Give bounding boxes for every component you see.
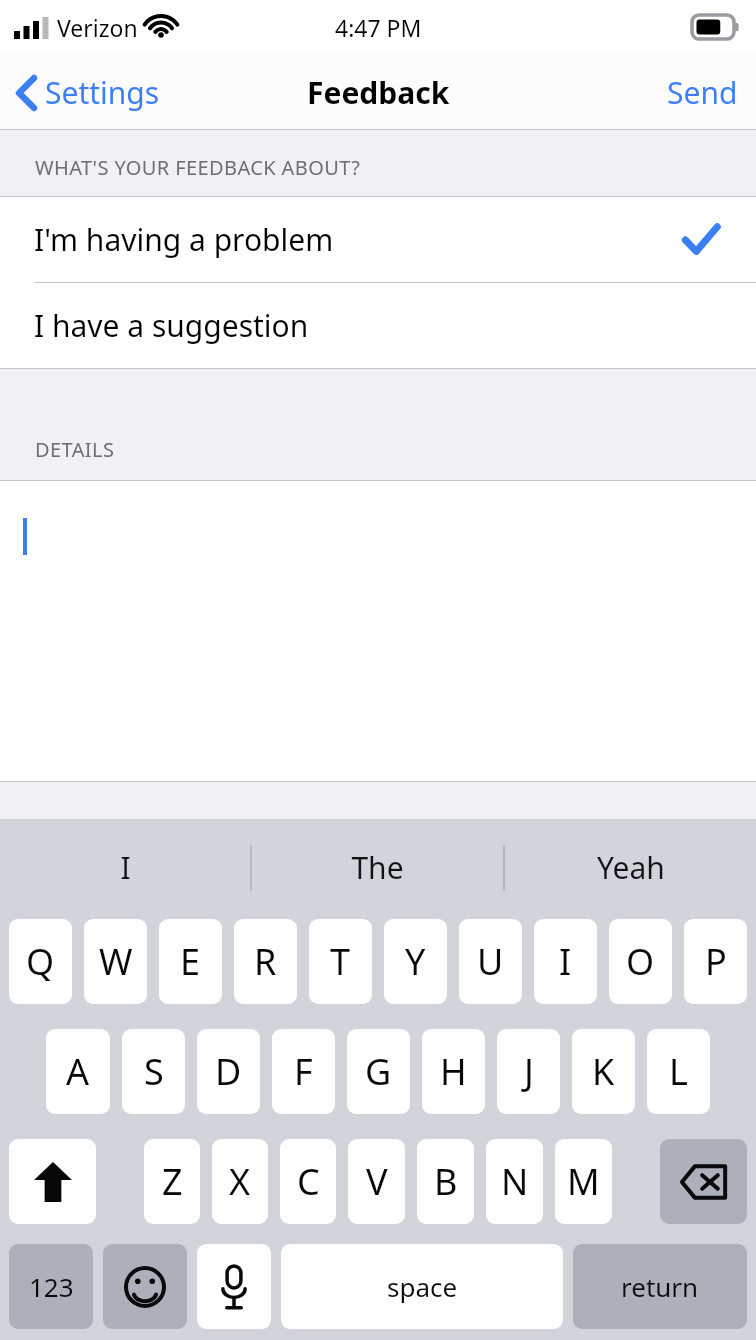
button[interactable]: I'm having a problem [0,197,756,282]
staticText: K [592,1047,615,1096]
staticText: T [330,937,351,986]
staticText: G [365,1047,392,1096]
button[interactable]: B [417,1139,474,1224]
button[interactable]: F [272,1029,335,1114]
button[interactable]: W [84,919,147,1004]
button[interactable]: R [234,919,297,1004]
button[interactable]: Q [9,919,72,1004]
staticText: W [99,937,133,986]
button[interactable]: O [609,919,672,1004]
staticText: 4:47 PM [335,12,422,43]
staticText: I [120,847,131,888]
button[interactable]: T [309,919,372,1004]
staticText: J [524,1047,534,1096]
button[interactable]: Backspace [660,1139,747,1224]
staticText: Settings [45,72,160,113]
staticText: 123 [29,1269,74,1304]
button[interactable]: P [684,919,747,1004]
button[interactable]: M [555,1139,612,1224]
button[interactable]: E [159,919,222,1004]
button[interactable]: Settings [0,64,174,121]
staticText: S [144,1047,164,1096]
staticText: Verizon [57,12,138,43]
staticText: Send [667,72,738,113]
staticText: H [440,1047,467,1096]
button[interactable]: V [348,1139,405,1224]
button[interactable]: D [197,1029,260,1114]
staticText: I have a suggestion [34,305,309,346]
staticText: L [669,1047,688,1096]
staticText: return [621,1269,699,1304]
button[interactable]: J [497,1029,560,1114]
button[interactable]: I have a suggestion [0,283,756,368]
staticText: X [229,1157,251,1206]
button[interactable] [0,481,756,781]
staticText: DETAILS [35,436,115,463]
staticText: I'm having a problem [34,219,334,260]
staticText: I [559,937,572,986]
button[interactable]: Yeah [505,819,756,916]
button[interactable]: N [486,1139,543,1224]
button[interactable]: 123 [9,1244,93,1329]
staticText: Z [162,1157,183,1206]
button[interactable]: C [280,1139,336,1224]
button[interactable]: I [534,919,597,1004]
button[interactable]: U [459,919,522,1004]
staticText: F [294,1047,313,1096]
button[interactable]: K [572,1029,635,1114]
staticText: D [215,1047,242,1096]
button[interactable]: L [647,1029,710,1114]
staticText: N [501,1157,529,1206]
button[interactable]: Z [144,1139,200,1224]
button[interactable]: Dictation [197,1244,271,1329]
button[interactable]: The [252,819,503,916]
button[interactable]: Y [384,919,447,1004]
staticText: Yeah [597,847,665,888]
button[interactable]: A [46,1029,110,1114]
staticText: Y [405,937,426,986]
staticText: WHAT'S YOUR FEEDBACK ABOUT? [35,154,361,181]
staticText: Feedback [307,72,450,113]
staticText: Q [26,937,55,986]
button[interactable]: Emoji [103,1244,187,1329]
button[interactable]: I [0,819,250,916]
staticText: E [180,937,201,986]
button[interactable]: Shift [9,1139,96,1224]
button[interactable]: G [347,1029,410,1114]
button[interactable]: H [422,1029,485,1114]
button[interactable]: S [122,1029,185,1114]
staticText: V [366,1157,388,1206]
staticText: The [351,847,404,888]
staticText: R [254,937,277,986]
staticText: M [567,1157,600,1206]
staticText: B [434,1157,458,1206]
staticText: U [477,937,504,986]
button[interactable]: X [212,1139,268,1224]
staticText: O [626,937,655,986]
button[interactable]: space [281,1244,563,1329]
button[interactable]: Send [649,62,756,123]
staticText: C [297,1157,320,1206]
staticText: space [387,1269,458,1304]
staticText: P [705,937,727,986]
button[interactable]: return [573,1244,747,1329]
staticText: A [66,1047,90,1096]
